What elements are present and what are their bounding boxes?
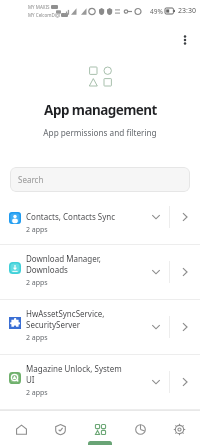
- staticText: SecurityServer: [26, 319, 81, 330]
- staticText: UI: [26, 374, 35, 385]
- staticText: 2 apps: [26, 278, 48, 288]
- staticText: HwAssetSyncService,: [26, 308, 105, 319]
- button[interactable]: Search: [10, 167, 190, 192]
- staticText: 2 apps: [26, 333, 48, 343]
- button[interactable]: Magazine Unlock, System: [0, 355, 200, 409]
- button[interactable]: Expand: [143, 355, 169, 409]
- staticText: 2 apps: [26, 225, 48, 235]
- staticText: Download Manager,: [26, 253, 101, 264]
- button[interactable]: Open details: [170, 355, 200, 409]
- staticText: App permissions and filtering: [43, 127, 157, 138]
- button[interactable]: Usage: [121, 411, 159, 445]
- button[interactable]: Download Manager,: [0, 245, 200, 299]
- staticText: Downloads: [26, 264, 68, 275]
- button[interactable]: More options: [174, 29, 196, 51]
- button[interactable]: Open details: [170, 190, 200, 244]
- button[interactable]: HwAssetSyncService,: [0, 300, 200, 354]
- button[interactable]: Expand: [143, 245, 169, 299]
- staticText: Contacts, Contacts Sync: [26, 211, 116, 222]
- button[interactable]: Home: [2, 411, 40, 445]
- staticText: Magazine Unlock, System: [26, 363, 122, 374]
- button[interactable]: Expand: [143, 190, 169, 244]
- button[interactable]: Expand: [143, 300, 169, 354]
- staticText: App management: [44, 101, 157, 119]
- button[interactable]: App management: [81, 411, 119, 445]
- staticText: MY MAXIS: [28, 4, 50, 10]
- staticText: 23:30: [178, 6, 196, 16]
- button[interactable]: Contacts, Contacts Sync: [0, 190, 200, 244]
- button[interactable]: Security: [41, 411, 79, 445]
- staticText: MY CelcomDigi: [28, 12, 60, 18]
- button[interactable]: Open details: [170, 245, 200, 299]
- staticText: Search: [18, 174, 44, 185]
- staticText: 2 apps: [26, 388, 48, 398]
- button[interactable]: Open details: [170, 300, 200, 354]
- button[interactable]: Settings: [160, 411, 198, 445]
- staticText: 49%: [150, 7, 163, 16]
